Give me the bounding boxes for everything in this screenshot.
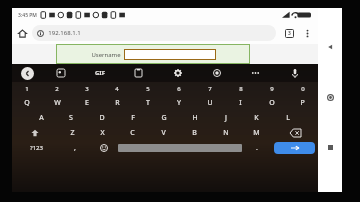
button[interactable]: ?123	[12, 140, 60, 156]
staticText: 5	[146, 85, 150, 93]
button[interactable]: sticker	[42, 64, 80, 82]
button[interactable]: J	[210, 110, 241, 125]
button[interactable]: D	[86, 110, 117, 125]
button[interactable]: mic	[275, 64, 314, 82]
staticText: 8	[239, 85, 243, 93]
button[interactable]: more	[236, 64, 275, 82]
button[interactable]: theme	[197, 64, 236, 82]
button[interactable]: .	[242, 140, 271, 156]
button[interactable]: Q	[12, 95, 42, 110]
button[interactable]: 5	[132, 83, 163, 95]
button[interactable]: 7	[194, 83, 225, 95]
button[interactable]: ,	[60, 140, 89, 156]
button[interactable]: GIF	[80, 64, 119, 82]
button[interactable]: Shift	[12, 125, 57, 140]
button[interactable]: Y	[163, 95, 194, 110]
staticText: K	[254, 113, 259, 123]
button[interactable]: U	[194, 95, 225, 110]
button[interactable]: 0	[287, 83, 318, 95]
staticText: Z	[70, 128, 75, 138]
staticText: 7	[208, 85, 212, 93]
staticText: 9	[270, 85, 274, 93]
button[interactable]: V	[148, 125, 179, 140]
staticText: 1	[25, 85, 29, 93]
staticText: P	[300, 98, 305, 108]
button[interactable]: clipboard	[119, 64, 158, 82]
staticText: W	[54, 98, 61, 108]
button[interactable]: F	[117, 110, 148, 125]
staticText: 3	[288, 30, 291, 37]
button[interactable]: B	[179, 125, 210, 140]
staticText: L	[286, 113, 290, 123]
button[interactable]: Back	[320, 37, 340, 57]
button[interactable]: 8	[225, 83, 256, 95]
staticText: 192.168.1.1	[48, 29, 81, 37]
button[interactable]: C	[117, 125, 148, 140]
button[interactable]: E	[72, 95, 102, 110]
button[interactable]: Back	[12, 64, 42, 82]
staticText: 2	[55, 85, 59, 93]
staticText: R	[115, 98, 120, 108]
staticText: O	[269, 98, 275, 108]
button[interactable]: R	[102, 95, 132, 110]
staticText: X	[100, 128, 105, 138]
button[interactable]: N	[210, 125, 241, 140]
button[interactable]: Emoji	[89, 140, 118, 156]
button[interactable]: 9	[256, 83, 287, 95]
staticText: B	[192, 128, 197, 138]
staticText: S	[69, 113, 73, 123]
staticText: Y	[177, 98, 181, 108]
button[interactable]: Z	[57, 125, 87, 140]
staticText: GIF	[95, 69, 105, 77]
button[interactable]: Tabs	[280, 24, 298, 42]
button[interactable]: 6	[163, 83, 194, 95]
staticText: ,	[74, 143, 76, 153]
staticText: N	[223, 128, 229, 138]
button[interactable]: Home	[12, 23, 32, 43]
button[interactable]: 2	[42, 83, 72, 95]
button[interactable]	[124, 49, 216, 60]
button[interactable]: G	[148, 110, 179, 125]
staticText: D	[99, 113, 105, 123]
button[interactable]: Enter	[274, 142, 315, 154]
button[interactable]: 192.168.1.1	[32, 25, 276, 41]
staticText: 4	[115, 85, 119, 93]
staticText: V	[161, 128, 166, 138]
staticText: M	[253, 128, 260, 138]
staticText: H	[192, 113, 198, 123]
staticText: Q	[24, 98, 30, 108]
button[interactable]: Recents	[320, 137, 340, 157]
button[interactable]: L	[272, 110, 303, 125]
button[interactable]: 1	[12, 83, 42, 95]
button[interactable]: K	[241, 110, 272, 125]
staticText: ?123	[30, 144, 43, 152]
button[interactable]: X	[87, 125, 117, 140]
staticText: 6	[177, 85, 181, 93]
button[interactable]: 3	[72, 83, 102, 95]
button[interactable]: A	[26, 110, 56, 125]
staticText: I	[239, 98, 242, 108]
staticText: C	[130, 128, 135, 138]
staticText: 0	[301, 85, 305, 93]
button[interactable]: settings	[158, 64, 197, 82]
button[interactable]: H	[179, 110, 210, 125]
button[interactable]: Home	[320, 87, 340, 107]
staticText: 3:45 PM	[18, 12, 37, 19]
staticText: U	[207, 98, 213, 108]
staticText: 3	[85, 85, 89, 93]
staticText: A	[39, 113, 44, 123]
button[interactable]: I	[225, 95, 256, 110]
button[interactable]: W	[42, 95, 72, 110]
button[interactable]: Backspace	[272, 125, 318, 140]
button[interactable]: More options	[298, 24, 316, 42]
staticText: J	[225, 113, 227, 123]
staticText: F	[131, 113, 135, 123]
button[interactable]: M	[241, 125, 272, 140]
button[interactable]: P	[287, 95, 318, 110]
button[interactable]: S	[56, 110, 86, 125]
button[interactable]: T	[132, 95, 163, 110]
button[interactable]: O	[256, 95, 287, 110]
button[interactable]: 4	[102, 83, 132, 95]
staticText: G	[161, 113, 167, 123]
